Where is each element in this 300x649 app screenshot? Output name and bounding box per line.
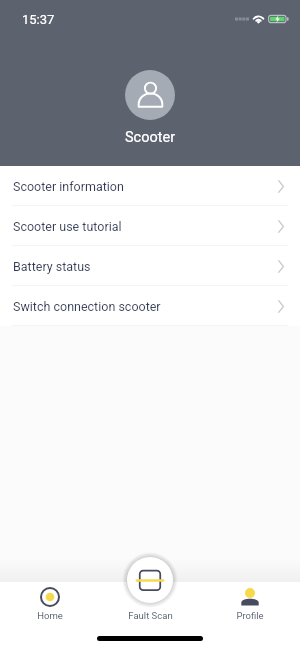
staticText: Scooter bbox=[125, 129, 176, 146]
button[interactable]: Battery status bbox=[0, 246, 300, 286]
other: Fault Scan bbox=[127, 557, 173, 603]
staticText: Home bbox=[37, 610, 63, 621]
button[interactable]: Fault Scan bbox=[113, 548, 187, 623]
button[interactable]: Scooter information bbox=[0, 166, 300, 206]
staticText: Switch connection scooter bbox=[13, 299, 161, 314]
staticText: Scooter information bbox=[13, 179, 124, 194]
staticText: 15:37 bbox=[22, 12, 55, 27]
button[interactable]: Home bbox=[20, 587, 80, 621]
button[interactable]: Profile bbox=[220, 587, 280, 621]
button[interactable]: Switch connection scooter bbox=[0, 286, 300, 326]
staticText: Scooter use tutorial bbox=[13, 219, 122, 234]
staticText: Battery status bbox=[13, 259, 91, 274]
staticText: Profile bbox=[236, 610, 264, 621]
button[interactable]: Scooter use tutorial bbox=[0, 206, 300, 246]
staticText: Fault Scan bbox=[128, 610, 173, 621]
button[interactable]: Profile avatar bbox=[125, 70, 175, 120]
